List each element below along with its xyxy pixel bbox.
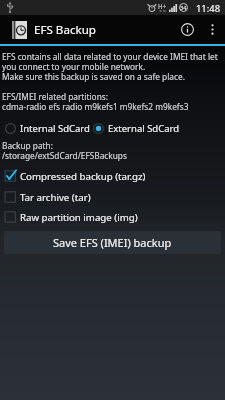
staticText: Save EFS (IMEI) backup xyxy=(53,235,172,250)
button[interactable]: Compressed backup (tar.gz) xyxy=(0,170,225,182)
button[interactable]: Save EFS (IMEI) backup xyxy=(4,231,221,254)
staticText: 34 xyxy=(180,4,187,12)
button[interactable]: Info xyxy=(173,15,201,44)
staticText: Raw partition image (img) xyxy=(20,211,138,223)
button[interactable]: Raw partition image (img) xyxy=(0,211,225,223)
button[interactable]: Internal SdCard xyxy=(0,120,90,136)
staticText: Tar archive (tar) xyxy=(20,191,91,203)
staticText: Compressed backup (tar.gz) xyxy=(20,170,146,182)
staticText: 11:48 xyxy=(196,2,221,15)
staticText: EFS Backup xyxy=(34,22,96,38)
staticText: Internal SdCard xyxy=(20,122,90,135)
staticText: H+ xyxy=(158,2,167,10)
staticText: Backup path: /storage/extSdCard/EFSBacku… xyxy=(2,140,127,162)
button[interactable]: More options xyxy=(201,15,223,44)
button[interactable]: External SdCard xyxy=(88,120,180,136)
staticText: EFS/IMEI related partitions: cdma-radio … xyxy=(2,91,189,113)
staticText: EFS contains all data related to your de… xyxy=(2,51,218,83)
staticText: External SdCard xyxy=(108,122,180,135)
button[interactable]: Tar archive (tar) xyxy=(0,191,225,203)
